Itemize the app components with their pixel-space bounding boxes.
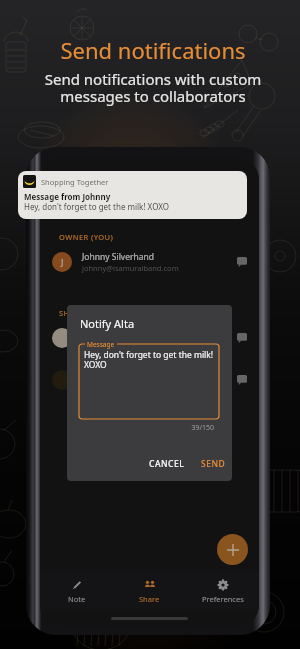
staticText: Send notifications with custom messages … bbox=[3, 69, 300, 106]
staticText: Shopping Together bbox=[41, 177, 109, 187]
staticText: J bbox=[61, 256, 64, 268]
staticText: Johnny Silverhand bbox=[82, 251, 154, 263]
staticText: Note bbox=[68, 594, 86, 604]
staticText: johnny@isamuraiband.com bbox=[82, 263, 179, 273]
button[interactable]: Share bbox=[113, 571, 186, 611]
staticText: Alta Cunningham bbox=[82, 327, 152, 339]
staticText: OWNER (YOU) bbox=[59, 232, 114, 242]
button[interactable]: Note bbox=[40, 571, 113, 611]
staticText: SEND bbox=[201, 458, 226, 470]
staticText: Message bbox=[87, 340, 115, 349]
button[interactable]: Add note bbox=[217, 534, 248, 565]
staticText: CANCEL bbox=[149, 458, 185, 470]
staticText: 39/150 bbox=[67, 423, 214, 433]
staticText: Notify Alta bbox=[80, 316, 135, 331]
staticText: Preferences bbox=[202, 594, 244, 604]
staticText: Hey, don't forget to get the milk! XOXO bbox=[84, 349, 214, 371]
button[interactable]: Preferences bbox=[186, 571, 259, 611]
button[interactable]: Alta Cunningham bbox=[40, 318, 259, 358]
staticText: Message from Johnny bbox=[24, 191, 111, 202]
button[interactable]: CANCEL bbox=[143, 454, 191, 474]
button[interactable]: Dexter DeShawn bbox=[40, 360, 259, 400]
staticText: Share bbox=[139, 594, 160, 604]
staticText: Hey, don't forget to get the milk! XOXO bbox=[24, 201, 170, 212]
staticText: Send notifications bbox=[60, 35, 246, 65]
staticText: SHARED WITH bbox=[59, 308, 114, 318]
staticText: alta@example.com bbox=[82, 339, 150, 349]
button[interactable]: J bbox=[40, 242, 259, 282]
button[interactable]: Shopping Together bbox=[18, 171, 247, 219]
button[interactable]: SEND bbox=[195, 454, 232, 474]
